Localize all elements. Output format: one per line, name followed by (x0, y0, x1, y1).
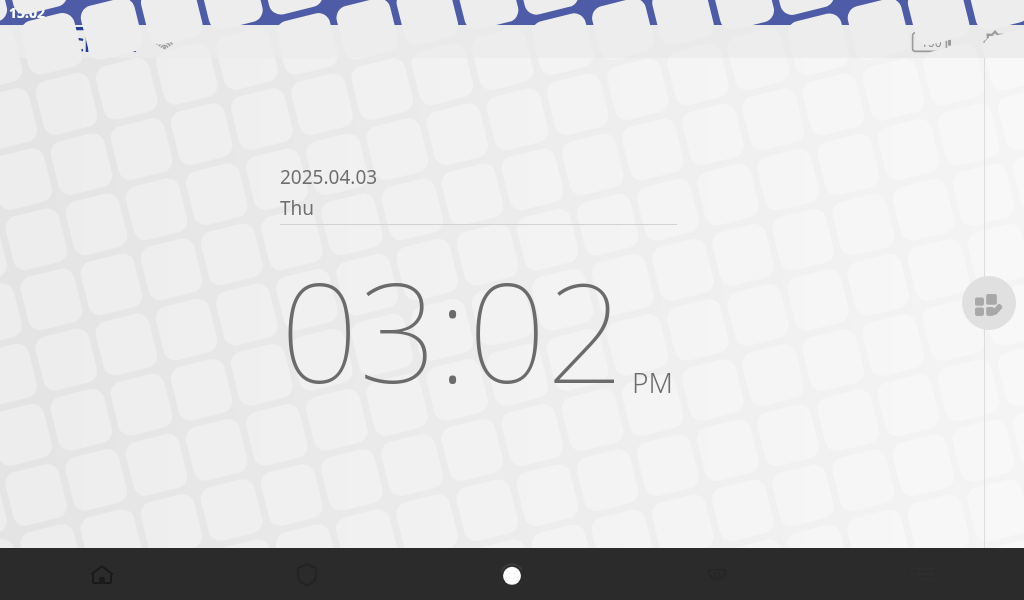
button[interactable]: 2025.04.03 (280, 164, 677, 423)
staticText: 2025.04.03 (280, 164, 378, 190)
staticText: Thu (280, 195, 315, 221)
button[interactable]: Settings (980, 27, 1010, 57)
staticText: Climax (72, 32, 137, 58)
button[interactable]: Battery 100 percent (910, 29, 952, 55)
staticText: PM (632, 363, 673, 401)
button[interactable]: Edit tiles (962, 276, 1016, 330)
staticText: 100 (921, 34, 942, 50)
button[interactable]: Arm (409, 548, 614, 600)
staticText: 03:02 (280, 235, 626, 423)
staticText: 15:02 (9, 3, 45, 22)
